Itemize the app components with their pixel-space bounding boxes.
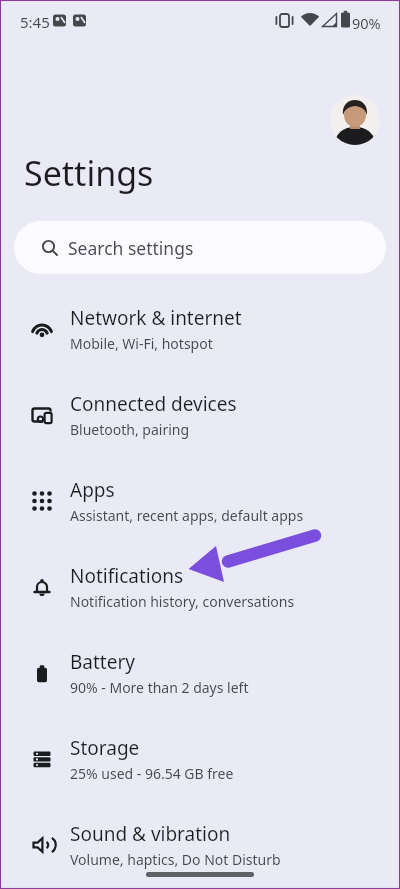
button[interactable] [330, 95, 380, 145]
staticText: Battery [70, 649, 135, 675]
staticText: Notifications [70, 563, 184, 589]
button[interactable]: Network & internet [0, 286, 400, 372]
staticText: Volume, haptics, Do Not Disturb [70, 850, 281, 869]
staticText: Network & internet [70, 305, 242, 331]
staticText: Notification history, conversations [70, 592, 295, 611]
staticText: Storage [70, 735, 140, 761]
staticText: Search settings [68, 236, 194, 260]
staticText: Apps [70, 477, 115, 503]
staticText: 90% - More than 2 days left [70, 678, 249, 697]
button[interactable]: Apps [0, 458, 400, 544]
staticText: 25% used - 96.54 GB free [70, 764, 234, 783]
button[interactable]: Connected devices [0, 372, 400, 458]
staticText: Assistant, recent apps, default apps [70, 506, 304, 525]
button[interactable]: Storage [0, 716, 400, 802]
staticText: Bluetooth, pairing [70, 420, 190, 439]
button[interactable]: Notifications [0, 544, 400, 630]
button[interactable]: Sound & vibration [0, 802, 400, 888]
staticText: Mobile, Wi-Fi, hotspot [70, 334, 213, 353]
button[interactable]: Battery [0, 630, 400, 716]
button[interactable]: Search settings [14, 221, 386, 274]
staticText: 5:45 [20, 12, 50, 32]
staticText: 90% [352, 13, 381, 33]
staticText: Sound & vibration [70, 821, 231, 847]
staticText: Settings [24, 150, 154, 196]
staticText: Connected devices [70, 391, 237, 417]
